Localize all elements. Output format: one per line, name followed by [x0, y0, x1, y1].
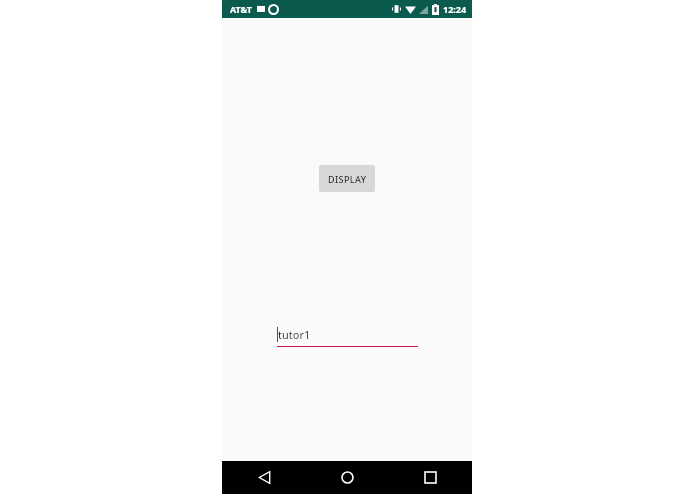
button[interactable]: Back — [222, 461, 306, 494]
staticText: tutor1 — [278, 327, 311, 342]
staticText: DISPLAY — [328, 173, 367, 185]
button[interactable]: tutor1 — [277, 324, 418, 350]
button[interactable]: Recent apps — [389, 461, 472, 494]
staticText: 12:24 — [443, 3, 467, 15]
staticText: AT&T — [230, 3, 253, 15]
button[interactable]: Home — [306, 461, 389, 494]
button[interactable]: DISPLAY — [319, 165, 375, 192]
